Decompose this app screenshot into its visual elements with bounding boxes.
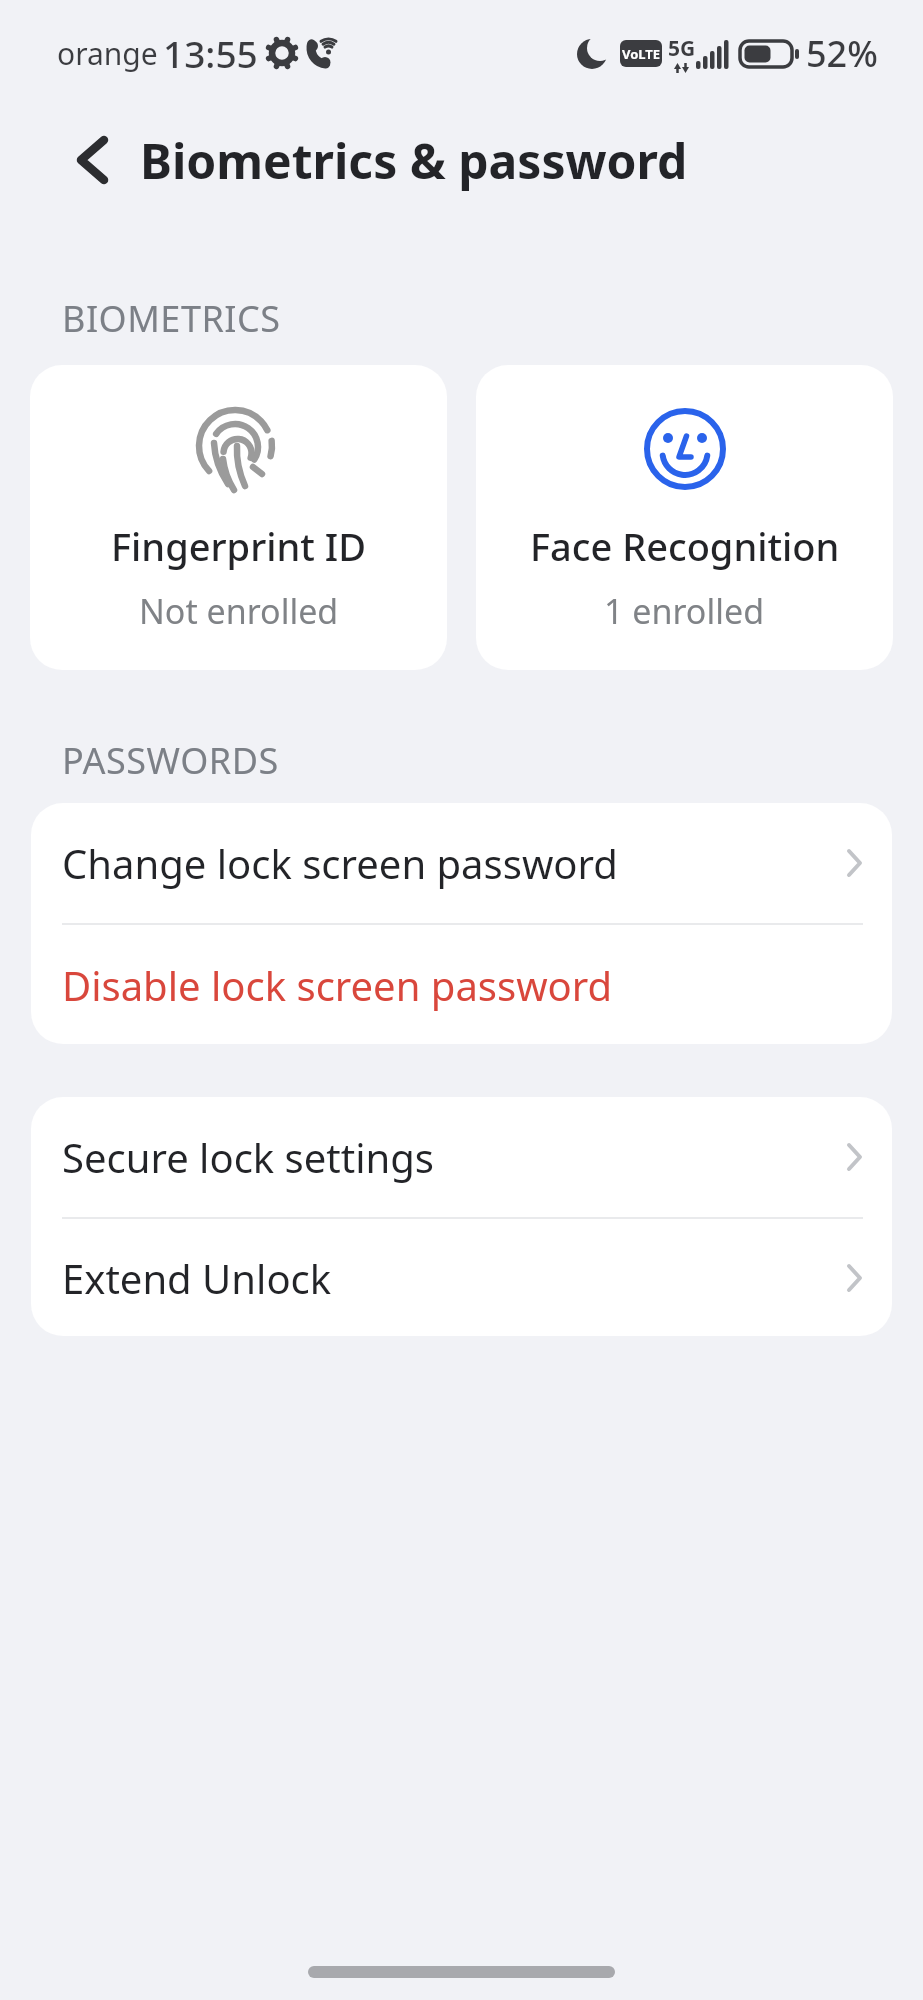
staticText: orange <box>57 33 158 74</box>
staticText: BIOMETRICS <box>62 294 281 343</box>
staticText: Biometrics & password <box>140 128 688 193</box>
staticText: VoLTE <box>622 45 661 63</box>
button[interactable]: Secure lock settings <box>31 1097 892 1217</box>
button[interactable]: Face Recognition <box>476 365 893 670</box>
button[interactable] <box>74 136 110 184</box>
staticText: Extend Unlock <box>62 1251 332 1305</box>
staticText: Face Recognition <box>530 520 840 572</box>
staticText: Fingerprint ID <box>111 520 366 572</box>
staticText: Change lock screen password <box>62 836 618 890</box>
staticText: Secure lock settings <box>62 1130 434 1184</box>
staticText: 1 enrolled <box>604 588 765 634</box>
button[interactable]: Fingerprint ID <box>30 365 447 670</box>
staticText: 5G <box>668 34 696 63</box>
staticText: Not enrolled <box>139 588 339 634</box>
staticText: 52% <box>806 29 878 78</box>
button[interactable]: Disable lock screen password <box>31 925 892 1044</box>
staticText: 13:55 <box>163 28 258 78</box>
staticText: PASSWORDS <box>62 736 279 785</box>
button[interactable]: Change lock screen password <box>31 803 892 923</box>
staticText: Disable lock screen password <box>62 958 613 1012</box>
button[interactable]: Extend Unlock <box>31 1219 892 1336</box>
